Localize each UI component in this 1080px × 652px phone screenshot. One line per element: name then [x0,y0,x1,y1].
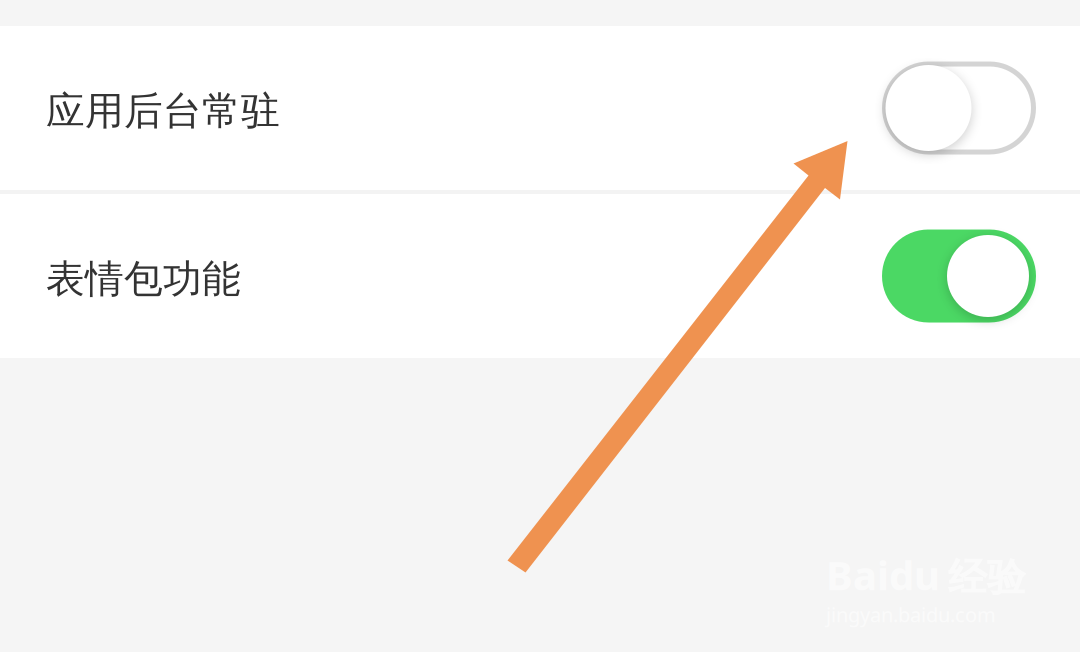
button[interactable]: 应用后台常驻, off [882,61,1036,154]
button[interactable]: 表情包功能 [0,194,1080,358]
button[interactable]: 表情包功能, on [882,229,1036,322]
staticText: 应用后台常驻 [46,87,280,135]
staticText: 表情包功能 [46,255,241,303]
button[interactable]: 应用后台常驻 [0,26,1080,190]
